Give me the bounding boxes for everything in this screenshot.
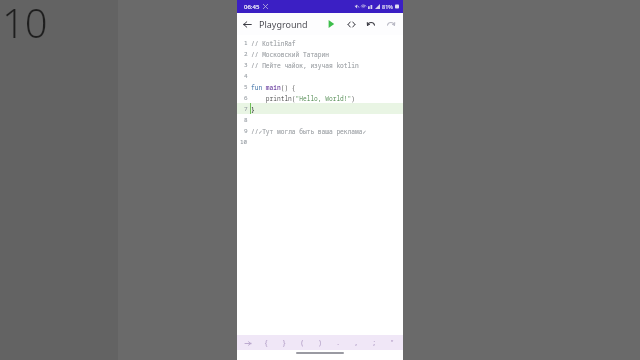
button[interactable]: Redo	[381, 14, 401, 34]
button[interactable]: Tab	[241, 336, 255, 350]
button[interactable]: {	[259, 336, 273, 350]
staticText: ,	[354, 338, 359, 348]
staticText: "	[390, 338, 395, 348]
staticText: println("Hello, World!")	[251, 94, 355, 102]
staticText: ;	[372, 338, 377, 348]
button[interactable]: Back	[237, 14, 257, 34]
staticText: }	[282, 338, 287, 348]
button[interactable]: Undo	[361, 14, 381, 34]
staticText: 06:45	[244, 3, 260, 11]
staticText: Playground	[259, 18, 308, 30]
button[interactable]: "	[385, 336, 399, 350]
button[interactable]: (	[295, 336, 309, 350]
staticText: 5	[244, 83, 248, 91]
button[interactable]: }	[277, 336, 291, 350]
staticText: 7	[244, 105, 248, 113]
button[interactable]: ,	[349, 336, 363, 350]
button[interactable]: ;	[367, 336, 381, 350]
staticText: // Московский Татарин	[251, 50, 329, 58]
staticText: // KotlinRaf	[251, 39, 296, 47]
staticText: )	[318, 338, 323, 348]
staticText: 10	[2, 0, 48, 49]
staticText: 6	[244, 94, 248, 102]
staticText: }	[251, 105, 255, 113]
staticText: fun main() {	[251, 83, 296, 91]
staticText: // Пейте чайок, изучая kotlin	[251, 61, 359, 69]
staticText: //✓Тут могла быть ваша реклама✓	[251, 127, 367, 135]
staticText: {	[264, 338, 269, 348]
staticText: 9	[244, 127, 248, 135]
staticText: 4	[244, 72, 248, 80]
button[interactable]: Run	[321, 14, 341, 34]
button[interactable]: )	[313, 336, 327, 350]
button[interactable]: .	[331, 336, 345, 350]
staticText: 3	[244, 61, 248, 69]
staticText: 81%	[382, 3, 393, 10]
button[interactable]: Code	[341, 14, 361, 34]
staticText: (	[300, 338, 305, 348]
staticText: 2	[244, 50, 248, 58]
staticText: .	[336, 338, 341, 348]
staticText: 10	[240, 138, 248, 146]
staticText: 8	[244, 116, 248, 124]
staticText: 1	[244, 39, 248, 47]
